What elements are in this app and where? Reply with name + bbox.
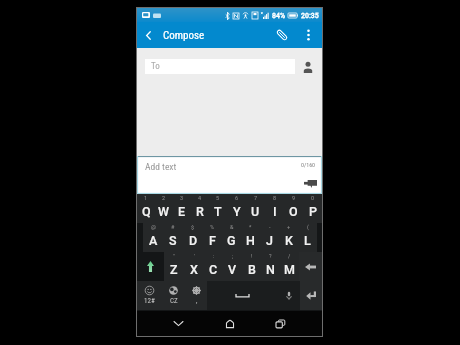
button[interactable]: 6 (227, 194, 246, 223)
button[interactable]: 0 (303, 194, 322, 223)
staticText: , (196, 297, 198, 305)
button[interactable]: Choose contact (295, 59, 320, 74)
button[interactable]: Home (204, 311, 255, 336)
staticText: 0/160 (301, 161, 316, 168)
staticText: 1 (144, 195, 148, 201)
staticText: " (173, 253, 175, 259)
button[interactable]: Change language (161, 281, 185, 310)
staticText: 4 (198, 195, 202, 201)
staticText: C (209, 262, 218, 277)
staticText: # (171, 224, 175, 230)
button[interactable]: 8 (265, 194, 284, 223)
button[interactable]: 9 (284, 194, 303, 223)
staticText: 5 (216, 195, 220, 201)
button[interactable]: Recent apps (255, 311, 306, 336)
staticText: % (210, 224, 215, 230)
button[interactable]: Space (207, 281, 278, 310)
button[interactable]: Settings (185, 281, 207, 310)
staticText: / (288, 253, 291, 259)
button[interactable]: + (279, 223, 298, 252)
button[interactable]: 3 (173, 194, 191, 223)
button[interactable]: Voice input (278, 281, 300, 310)
staticText: T (214, 204, 222, 219)
staticText: $ (191, 224, 195, 230)
button[interactable]: ? (261, 252, 280, 281)
button[interactable]: 5 (209, 194, 227, 223)
staticText: I (273, 204, 277, 219)
button[interactable]: Attach (272, 22, 292, 48)
staticText: O (289, 204, 298, 219)
staticText: * (249, 224, 252, 230)
staticText: U (251, 204, 260, 219)
staticText: Q (142, 204, 151, 219)
staticText: 0 (311, 195, 315, 201)
staticText: ! (251, 253, 253, 259)
button[interactable]: 7 (246, 194, 265, 223)
staticText: ( (307, 224, 309, 230)
staticText: V (228, 262, 237, 277)
staticText: Z (170, 262, 178, 277)
staticText: J (266, 233, 273, 248)
staticText: ' (194, 253, 195, 259)
button[interactable]: ( (298, 223, 317, 252)
staticText: Compose (163, 29, 205, 42)
staticText: 2 (162, 195, 166, 201)
button[interactable]: More options (300, 22, 317, 48)
staticText: Y (233, 204, 241, 219)
staticText: & (230, 224, 234, 230)
staticText: R (196, 204, 204, 219)
button[interactable]: Enter (300, 281, 322, 310)
staticText: + (287, 224, 291, 230)
staticText: N (266, 262, 275, 277)
button[interactable]: ; (223, 252, 242, 281)
staticText: X (190, 262, 198, 277)
staticText: H (246, 233, 255, 248)
staticText: L (304, 233, 311, 248)
staticText: 6 (235, 195, 239, 201)
staticText: P (309, 204, 317, 219)
button[interactable]: 1 (137, 194, 155, 223)
button[interactable]: % (203, 223, 222, 252)
button[interactable]: ! (242, 252, 261, 281)
staticText: A (149, 233, 158, 248)
staticText: M (284, 262, 295, 277)
staticText: G (227, 233, 236, 248)
button[interactable]: $ (183, 223, 203, 252)
button[interactable]: & (222, 223, 241, 252)
staticText: D (189, 233, 198, 248)
button[interactable]: # (163, 223, 183, 252)
staticText: ; (232, 253, 234, 259)
staticText: S (169, 233, 177, 248)
button[interactable]: Backspace (299, 252, 322, 281)
button[interactable]: " (164, 252, 184, 281)
button[interactable]: 4 (191, 194, 209, 223)
staticText: 8 (273, 195, 277, 201)
button[interactable]: 2 (155, 194, 173, 223)
button[interactable]: : (204, 252, 223, 281)
staticText: W (158, 204, 170, 219)
button[interactable]: Emoji (137, 281, 161, 310)
button[interactable]: @ (143, 223, 163, 252)
staticText: CZ (170, 297, 178, 305)
button[interactable]: Send message (298, 177, 322, 189)
staticText: 20:35 (301, 11, 319, 20)
staticText: 7 (254, 195, 258, 201)
button[interactable]: Back (137, 22, 159, 48)
staticText: Add text (145, 161, 177, 172)
staticText: F (209, 233, 216, 248)
button[interactable]: Shift (137, 252, 164, 281)
button[interactable]: - (260, 223, 279, 252)
button[interactable]: Back (153, 311, 204, 336)
staticText: 3 (180, 195, 184, 201)
button[interactable]: * (241, 223, 260, 252)
button[interactable]: To (145, 59, 295, 74)
staticText: K (285, 233, 293, 248)
staticText: - (269, 224, 271, 230)
staticText: E (178, 204, 186, 219)
staticText: 84% (272, 11, 285, 20)
button[interactable]: / (280, 252, 299, 281)
button[interactable]: ' (184, 252, 204, 281)
staticText: ? (269, 253, 272, 259)
staticText: 12# (144, 297, 155, 305)
staticText: To (151, 61, 160, 72)
